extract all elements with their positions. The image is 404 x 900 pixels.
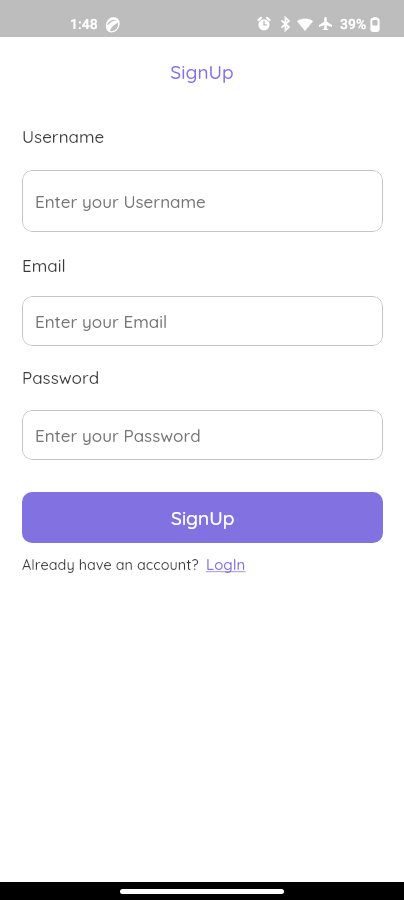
staticText: 39% [340, 16, 367, 32]
staticText: SignUp [171, 506, 235, 530]
button[interactable]: Enter your Password [22, 410, 383, 460]
staticText: LogIn [206, 555, 246, 574]
button[interactable]: Enter your Username [22, 170, 383, 232]
staticText: Enter your Email [35, 311, 168, 332]
staticText: Enter your Password [35, 425, 201, 446]
staticText: Already have an account? [22, 556, 199, 574]
staticText: 1:48 [70, 16, 98, 32]
button[interactable]: LogIn [206, 555, 246, 574]
staticText: Username [22, 126, 105, 147]
staticText: Password [22, 367, 100, 388]
staticText: Email [22, 255, 66, 276]
staticText: Enter your Username [35, 191, 206, 212]
button[interactable]: Enter your Email [22, 296, 383, 346]
button[interactable]: SignUp [22, 492, 383, 543]
staticText: SignUp [0, 60, 404, 84]
